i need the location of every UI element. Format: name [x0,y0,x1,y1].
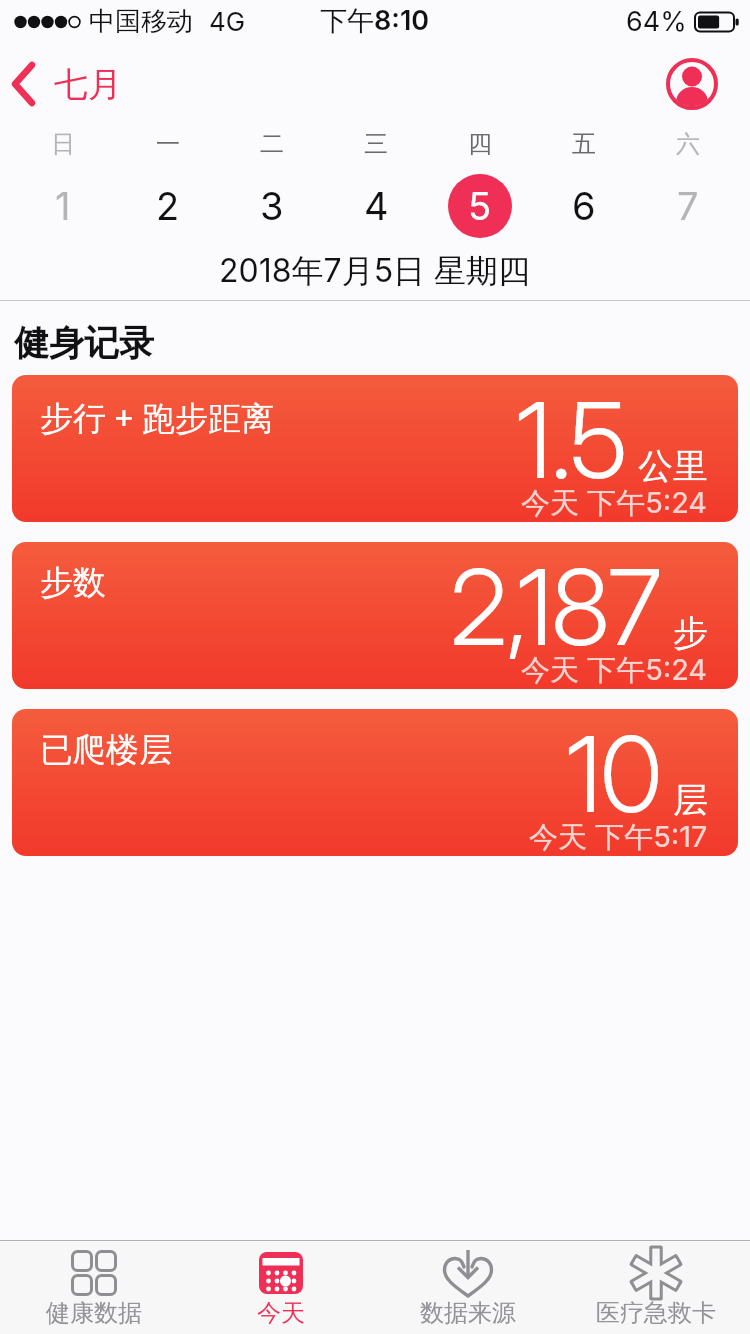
staticText: 6 [572,183,596,229]
staticText: 日 [51,129,75,159]
staticText: 64% [626,5,687,38]
staticText: 公里 [638,444,708,488]
button[interactable]: 医疗急救卡 [562,1241,750,1334]
staticText: 1 [55,183,71,229]
button[interactable] [666,58,718,110]
staticText: 六 [676,129,700,159]
staticText: 二 [260,129,284,159]
staticText: 已爬楼层 [40,729,172,771]
staticText: 2018年7月5日 星期四 [219,251,531,292]
button[interactable]: 健康数据 [0,1241,187,1334]
staticText: 三 [364,129,388,159]
staticText: 数据来源 [420,1298,516,1328]
staticText: 5 [468,183,492,229]
staticText: 医疗急救卡 [596,1298,716,1328]
staticText: 层 [673,778,708,822]
staticText: 健康数据 [46,1298,142,1328]
staticText: 今天 下午5:24 [521,485,708,522]
staticText: 3 [260,183,284,229]
staticText: 七月 [54,63,122,106]
staticText: 四 [468,129,492,159]
staticText: 2,187 [450,544,661,670]
button[interactable]: 步数 [12,542,738,689]
staticText: 五 [572,129,596,159]
staticText: 今天 下午5:17 [529,819,708,856]
button[interactable]: 步行 + 跑步距离 [12,375,738,522]
staticText: 1.5 [516,377,626,503]
staticText: 一 [156,129,180,159]
button[interactable]: 已爬楼层 [12,709,738,856]
staticText: 健身记录 [14,321,154,365]
button[interactable]: 数据来源 [374,1241,562,1334]
staticText: 步数 [40,562,106,604]
staticText: 7 [677,183,699,229]
staticText: 今天 [257,1298,305,1328]
button[interactable]: 七月 [12,62,122,106]
staticText: 中国移动 [89,5,193,38]
staticText: 4 [364,183,389,229]
staticText: 今天 下午5:24 [521,652,708,689]
staticText: 下午8:10 [320,4,430,38]
button[interactable]: 5 [448,174,512,238]
staticText: 10 [566,711,661,837]
staticText: 步行 + 跑步距离 [40,395,275,440]
staticText: 2 [156,183,180,229]
staticText: 4G [209,6,246,37]
button[interactable]: 今天 [187,1241,374,1334]
staticText: 步 [673,611,708,655]
